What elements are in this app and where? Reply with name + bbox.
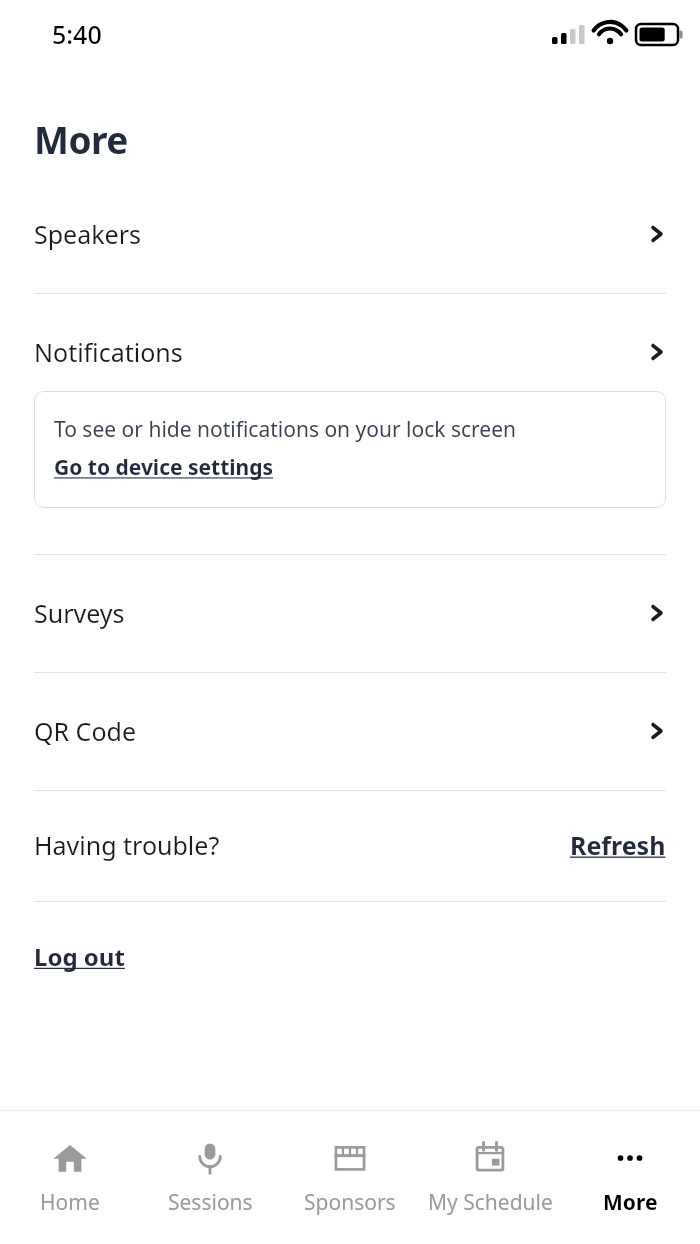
staticText: QR Code	[34, 714, 136, 748]
button[interactable]: My Schedule	[420, 1133, 560, 1223]
staticText: More	[34, 114, 128, 164]
staticText: To see or hide notifications on your loc…	[54, 415, 517, 444]
button[interactable]: Sessions	[140, 1133, 280, 1223]
button[interactable]: Notifications	[0, 335, 700, 369]
button[interactable]: Home	[0, 1133, 140, 1223]
staticText: Having trouble?	[34, 828, 220, 862]
staticText: More	[603, 1188, 658, 1217]
staticText: My Schedule	[428, 1188, 553, 1217]
button[interactable]: Log out	[0, 934, 700, 979]
staticText: Refresh	[570, 828, 666, 862]
staticText: Home	[40, 1188, 100, 1217]
button[interactable]: More	[560, 1133, 700, 1223]
staticText: Log out	[34, 940, 125, 973]
button[interactable]: Surveys	[0, 596, 700, 630]
button[interactable]: Sponsors	[280, 1133, 420, 1223]
staticText: Speakers	[34, 217, 141, 251]
button[interactable]: To see or hide notifications on your loc…	[34, 391, 666, 508]
staticText: Notifications	[34, 335, 183, 369]
button[interactable]: QR Code	[0, 714, 700, 748]
staticText: 5:40	[52, 17, 102, 51]
staticText: Sponsors	[304, 1188, 396, 1217]
button[interactable]: Having trouble?	[0, 828, 700, 862]
staticText: Sessions	[168, 1188, 253, 1217]
button[interactable]: Speakers	[0, 217, 700, 251]
staticText: Surveys	[34, 596, 125, 630]
staticText: Go to device settings	[54, 453, 274, 482]
